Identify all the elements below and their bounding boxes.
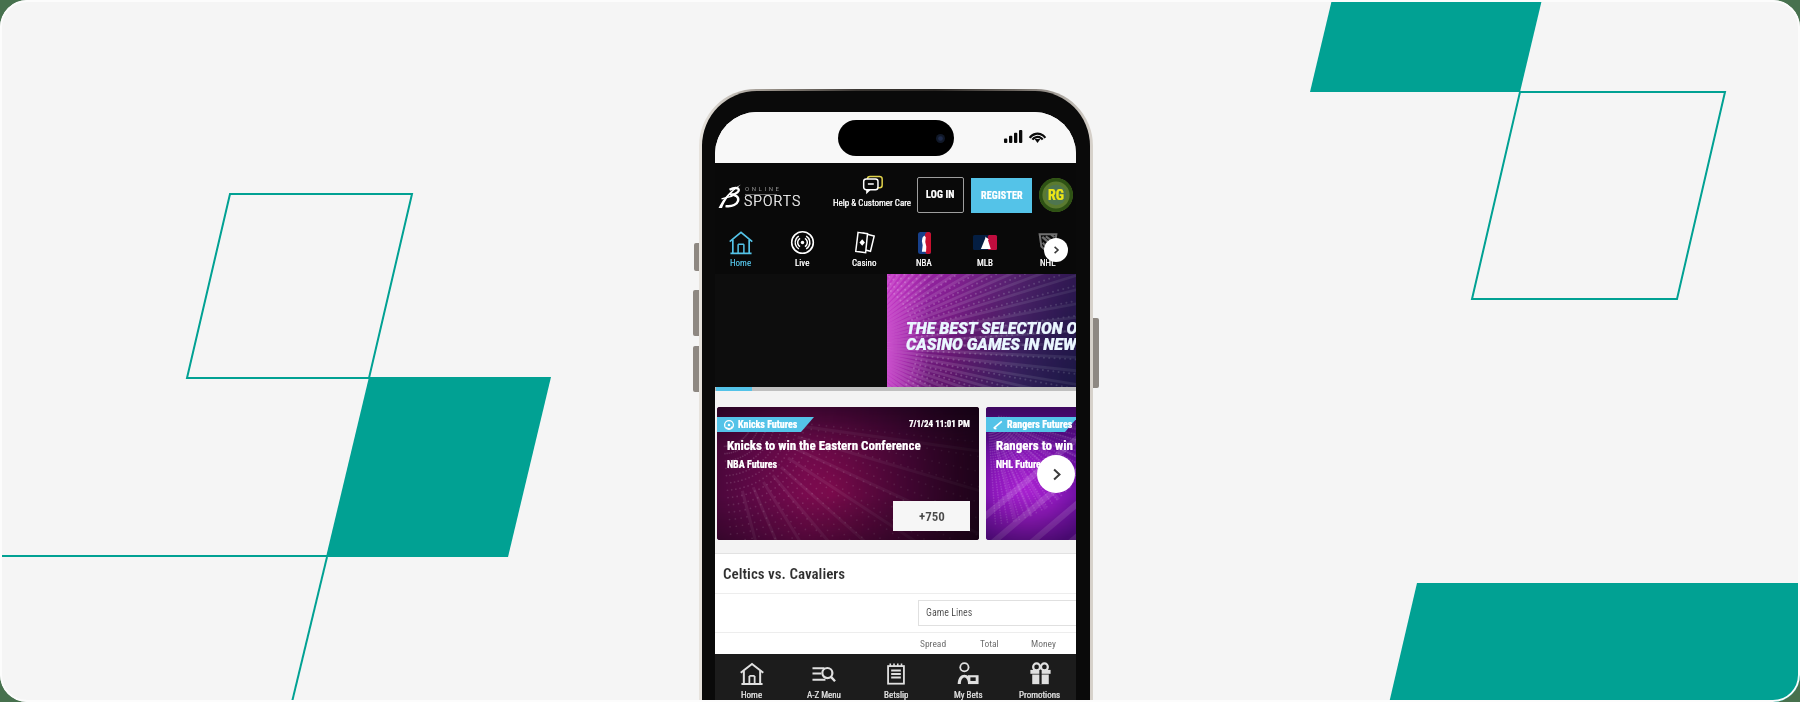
button[interactable]: Home bbox=[715, 654, 788, 702]
button[interactable]: Home bbox=[717, 230, 765, 269]
staticText: Knicks Futures bbox=[738, 419, 798, 431]
button[interactable]: REGISTER bbox=[971, 178, 1032, 213]
staticText: My Bets bbox=[954, 690, 983, 701]
button[interactable]: Next promotion bbox=[1037, 455, 1075, 493]
button[interactable]: LOG IN bbox=[917, 177, 964, 213]
staticText: Rangers Futures bbox=[1007, 419, 1073, 431]
button[interactable]: Knicks Futures bbox=[717, 407, 979, 540]
staticText: NHL bbox=[1040, 258, 1056, 269]
button[interactable]: NBA bbox=[900, 230, 948, 269]
staticText: RG bbox=[1048, 187, 1064, 203]
staticText: Help & Customer Care bbox=[833, 198, 912, 209]
staticText: CASINO GAMES IN NEW bbox=[906, 335, 1076, 354]
button[interactable]: Betslip bbox=[860, 654, 932, 702]
staticText: Knicks to win the Eastern Conference bbox=[727, 438, 921, 453]
staticText: NHL Futures bbox=[996, 459, 1046, 471]
staticText: Live bbox=[795, 258, 810, 269]
staticText: NBA bbox=[916, 258, 932, 269]
button[interactable]: More categories bbox=[1044, 238, 1068, 262]
button[interactable]: THE BEST SELECTION OF bbox=[887, 274, 1076, 391]
staticText: MLB bbox=[977, 258, 993, 269]
staticText: 7/1/24 11:01 PM bbox=[909, 419, 970, 430]
button[interactable]: A-Z Menu bbox=[788, 654, 860, 702]
staticText: Game Lines bbox=[926, 607, 973, 619]
button[interactable]: Rangers Futures bbox=[986, 407, 1076, 540]
staticText: Money bbox=[1031, 638, 1056, 649]
staticText: A-Z Menu bbox=[807, 690, 841, 701]
staticText: Celtics vs. Cavaliers bbox=[723, 565, 846, 583]
staticText: Betslip bbox=[884, 690, 909, 701]
button[interactable]: NHL bbox=[1024, 230, 1072, 269]
button[interactable]: Live bbox=[778, 230, 826, 269]
staticText: Promotions bbox=[1019, 690, 1061, 701]
staticText: Home bbox=[730, 258, 752, 269]
button[interactable]: Game Lines bbox=[918, 600, 1076, 626]
button[interactable]: Help & Customer Care bbox=[832, 176, 912, 209]
staticText: Rangers to win bbox=[996, 438, 1073, 453]
staticText: ONLINE bbox=[745, 185, 782, 192]
staticText: Spread bbox=[920, 638, 947, 649]
button[interactable]: Casino bbox=[840, 230, 888, 269]
staticText: Total bbox=[980, 638, 999, 649]
button[interactable]: +750 bbox=[893, 501, 970, 531]
staticText: REGISTER bbox=[981, 190, 1023, 202]
staticText: NBA Futures bbox=[727, 459, 778, 471]
staticText: SPORTS bbox=[744, 193, 802, 209]
button[interactable]: MLB bbox=[961, 230, 1009, 269]
staticText: LOG IN bbox=[926, 189, 955, 201]
staticText: Home bbox=[741, 690, 763, 701]
button[interactable]: Responsible Gaming bbox=[1039, 178, 1073, 212]
button[interactable]: My Bets bbox=[932, 654, 1004, 702]
button[interactable]: Promotions bbox=[1004, 654, 1076, 702]
staticText: THE BEST SELECTION OF bbox=[906, 319, 1076, 338]
staticText: Casino bbox=[852, 258, 877, 269]
staticText: +750 bbox=[919, 509, 945, 524]
